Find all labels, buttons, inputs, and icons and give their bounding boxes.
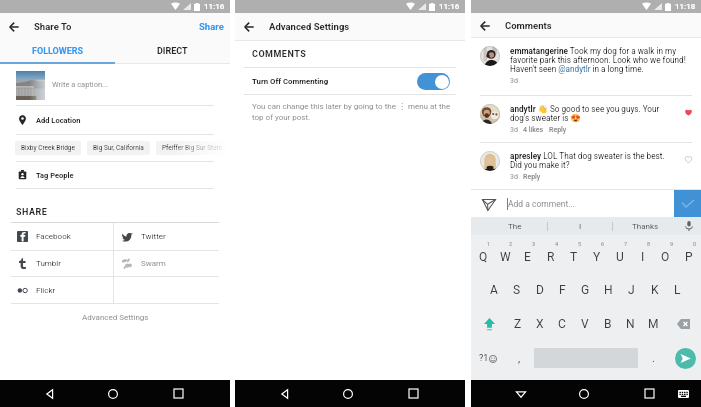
button[interactable]: S (505, 273, 528, 307)
button[interactable]: Share (193, 17, 230, 36)
staticText: 3d (510, 173, 518, 181)
button[interactable]: , (505, 341, 534, 375)
button[interactable]: Tumblr (0, 251, 113, 276)
button[interactable]: Turn Off Commenting (235, 68, 465, 94)
button[interactable]: Z (507, 307, 529, 341)
staticText: You can change this later by going to th… (252, 102, 459, 122)
button[interactable]: Big Sur, California (87, 141, 150, 155)
button[interactable]: F (551, 273, 574, 307)
button[interactable]: J (620, 273, 643, 307)
button[interactable]: B (596, 307, 619, 341)
button[interactable]: Back (271, 380, 299, 407)
button[interactable]: Flickr (0, 277, 113, 303)
button[interactable]: H (597, 273, 620, 307)
button[interactable]: R (539, 240, 562, 273)
button[interactable]: Direct message (471, 190, 507, 217)
button[interactable]: O (654, 240, 677, 273)
button[interactable]: Home (570, 380, 598, 407)
button[interactable]: X (529, 307, 551, 341)
staticText: Y (593, 250, 601, 264)
button[interactable]: M (642, 307, 665, 341)
button[interactable]: D (528, 273, 551, 307)
button[interactable]: Post comment (674, 190, 701, 217)
button[interactable]: Back (476, 17, 493, 34)
button[interactable]: Bixby Creek Bridge (15, 141, 81, 155)
staticText: . (652, 352, 655, 365)
button[interactable]: K (643, 273, 666, 307)
button[interactable]: W (494, 240, 516, 273)
button[interactable]: Pfeiffer Big Sur State Park (156, 141, 230, 155)
button[interactable]: Back (5, 18, 22, 35)
staticText: Comments (505, 20, 552, 31)
button[interactable]: Recents (635, 380, 663, 407)
button[interactable]: N (619, 307, 642, 341)
button[interactable]: Recents (164, 380, 192, 407)
button[interactable]: Send (669, 341, 701, 375)
staticText: apresley LOL That dog sweater is the bes… (510, 151, 676, 170)
staticText: D (536, 283, 544, 297)
staticText: X (536, 317, 544, 331)
button[interactable]: I (548, 217, 612, 235)
button[interactable]: Thanks (613, 217, 677, 235)
button[interactable]: Voice input (677, 217, 701, 235)
staticText: 3d (510, 126, 518, 134)
button[interactable]: Backspace (665, 307, 701, 341)
button[interactable]: A (483, 273, 505, 307)
button[interactable]: apresley LOL That dog sweater is the bes… (471, 143, 701, 189)
button[interactable]: I (631, 240, 654, 273)
staticText: 3d (510, 77, 518, 85)
staticText: Tumblr (36, 259, 61, 268)
button[interactable]: C (551, 307, 573, 341)
button[interactable]: The (483, 217, 547, 235)
button[interactable]: L (666, 273, 689, 307)
button[interactable]: Advanced Settings (0, 304, 230, 331)
button[interactable]: emmatangerine Took my dog for a walk in … (471, 38, 701, 95)
staticText: K (651, 283, 659, 297)
staticText: V (581, 317, 589, 331)
button[interactable]: Back (240, 18, 257, 35)
button[interactable]: Add Location (0, 106, 230, 134)
button[interactable]: Facebook (0, 223, 113, 250)
button[interactable]: V (573, 307, 596, 341)
button[interactable]: Home (334, 380, 362, 407)
staticText: U (616, 250, 624, 264)
button[interactable]: andytlr 👋 So good to see you guys. Your … (471, 96, 701, 142)
button[interactable]: DIRECT (115, 39, 230, 64)
staticText: O (661, 250, 670, 264)
button[interactable]: Y (585, 240, 608, 273)
staticText: 9 (670, 241, 674, 247)
staticText: 11:18 (675, 2, 696, 11)
button[interactable]: Twitter (114, 223, 230, 250)
button[interactable]: Like (676, 104, 701, 142)
button[interactable]: U (608, 240, 631, 273)
button[interactable]: FOLLOWERS (0, 39, 115, 64)
button[interactable]: P (677, 240, 700, 273)
button[interactable]: Back (36, 380, 64, 407)
button[interactable]: T (562, 240, 585, 273)
staticText: Tag People (36, 171, 74, 180)
button[interactable]: Swarm (114, 251, 230, 276)
button[interactable]: Symbols (471, 341, 505, 375)
button[interactable]: Show keyboard (669, 380, 697, 407)
button[interactable]: Recents (399, 380, 427, 407)
button[interactable]: G (574, 273, 597, 307)
button[interactable]: Back (507, 380, 535, 407)
staticText: B (604, 317, 612, 331)
staticText: ?1 (479, 353, 489, 364)
staticText: I (579, 222, 582, 231)
staticText: SHARE (16, 207, 48, 218)
staticText: R (547, 250, 555, 264)
staticText: , (518, 352, 521, 365)
button[interactable]: Home (99, 380, 127, 407)
button[interactable]: Write a caption... (0, 64, 230, 105)
staticText: Bixby Creek Bridge (21, 144, 75, 152)
button[interactable]: Add a comment... (507, 190, 674, 217)
staticText: J (628, 283, 635, 297)
button[interactable]: . (638, 341, 669, 375)
button[interactable]: Shift (471, 307, 507, 341)
button[interactable]: E (516, 240, 539, 273)
button[interactable]: Q (472, 240, 494, 273)
button[interactable]: Tag People (0, 162, 230, 188)
button[interactable]: Like (676, 151, 701, 189)
